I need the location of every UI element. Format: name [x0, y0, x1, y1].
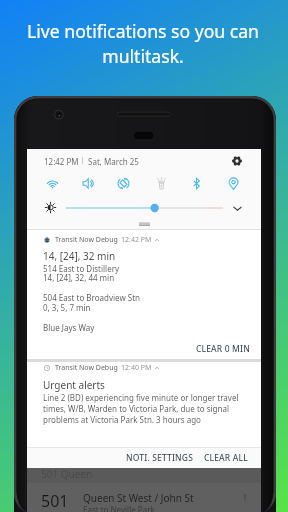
button[interactable]: Sound	[77, 172, 99, 194]
staticText: Queen St West / John St	[83, 491, 194, 505]
button[interactable]	[27, 230, 261, 359]
staticText: 0, 3, 5, 7 min	[43, 302, 91, 313]
staticText: East to Neville Park	[83, 504, 155, 512]
staticText: Transit Now Debug	[55, 235, 118, 245]
staticText: Urgent alerts	[43, 378, 105, 392]
button[interactable]	[27, 362, 261, 448]
staticText: Line 2 (BD) experiencing five minute or …	[43, 392, 239, 403]
staticText: Transit Now Debug	[55, 363, 118, 373]
staticText: CLEAR 0 MIN	[196, 343, 250, 355]
button[interactable]	[27, 483, 261, 512]
button[interactable]: Settings	[230, 154, 244, 168]
staticText: 501	[41, 490, 69, 512]
button[interactable]: Auto-rotate	[112, 172, 134, 194]
staticText: Blue Jays Way	[43, 322, 95, 333]
staticText: Sat, March 25	[88, 156, 139, 167]
staticText: problems at Victoria Park Stn. 3 hours a…	[43, 414, 201, 425]
staticText: 12:42 PM	[44, 156, 79, 167]
staticText: 12:40 PM	[121, 363, 152, 373]
staticText: times, W/B, Warden to Victoria Park, due…	[43, 403, 230, 414]
staticText: 514 East to Distillery	[43, 263, 120, 274]
staticText: CLEAR ALL	[204, 452, 248, 464]
button[interactable]: CLEAR 0 MIN	[194, 341, 251, 357]
staticText: 504 East to Broadview Stn	[43, 292, 141, 303]
button[interactable]: Flashlight	[150, 172, 172, 194]
staticText: 14, [24], 32 min	[43, 249, 116, 263]
button[interactable]: Bluetooth	[185, 172, 207, 194]
staticText: NOTI. SETTINGS	[126, 452, 194, 464]
staticText: Live notifications so you can multitask.	[23, 19, 263, 68]
button[interactable]: Expand quick settings	[230, 201, 244, 215]
button[interactable]: Location	[222, 172, 244, 194]
staticText: 14, [24], 32, 44 min	[43, 272, 115, 283]
button[interactable]: NOTI. SETTINGS	[125, 450, 195, 466]
button[interactable]: Wi-Fi	[41, 172, 63, 194]
button[interactable]: CLEAR ALL	[202, 450, 250, 466]
staticText: 12:42 PM	[121, 235, 152, 245]
staticText: 501 Queen	[41, 467, 93, 481]
